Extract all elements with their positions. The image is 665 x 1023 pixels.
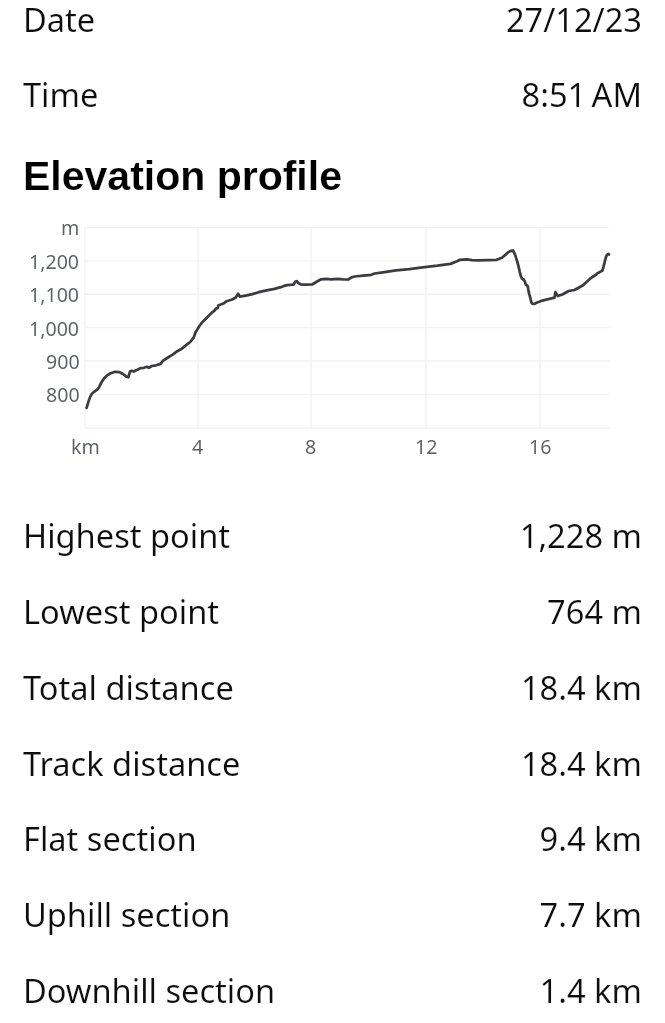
staticText: 9.4 km	[539, 816, 642, 860]
staticText: 4	[192, 433, 204, 460]
staticText: 1,000	[29, 315, 80, 342]
staticText: Uphill section	[23, 892, 231, 936]
button[interactable]: Downhill section	[0, 952, 665, 1023]
staticText: Total distance	[23, 665, 234, 709]
staticText: Time	[23, 72, 99, 116]
staticText: Elevation profile	[23, 153, 342, 199]
staticText: 12	[415, 433, 438, 460]
staticText: 764 m	[547, 589, 642, 633]
staticText: 8	[305, 433, 317, 460]
staticText: 18.4 km	[520, 665, 642, 709]
staticText: Lowest point	[23, 589, 220, 633]
staticText: 1,200	[29, 248, 80, 275]
staticText: 7.7 km	[539, 892, 642, 936]
button[interactable]: Track distance	[0, 725, 665, 801]
button[interactable]: Date	[0, 0, 665, 57]
staticText: Track distance	[23, 741, 241, 785]
staticText: 18.4 km	[520, 741, 642, 785]
staticText: 1.4 km	[539, 968, 642, 1012]
staticText: Highest point	[23, 513, 231, 557]
staticText: 27/12/23	[505, 0, 642, 41]
staticText: 8:51 AM	[521, 72, 642, 116]
staticText: Date	[23, 0, 96, 41]
staticText: 1,100	[29, 281, 80, 308]
button[interactable]: Highest point	[0, 497, 665, 573]
staticText: Flat section	[23, 816, 197, 860]
staticText: 900	[46, 348, 80, 375]
button[interactable]: Lowest point	[0, 573, 665, 649]
staticText: Downhill section	[23, 968, 276, 1012]
staticText: 16	[529, 433, 552, 460]
button[interactable]: Flat section	[0, 800, 665, 876]
button[interactable]: Uphill section	[0, 876, 665, 952]
staticText: km	[71, 433, 100, 460]
staticText: 800	[46, 381, 80, 408]
staticText: 1,228 m	[519, 513, 642, 557]
button[interactable]: Time	[0, 56, 665, 132]
staticText: m	[61, 214, 80, 241]
button[interactable]: Total distance	[0, 649, 665, 725]
